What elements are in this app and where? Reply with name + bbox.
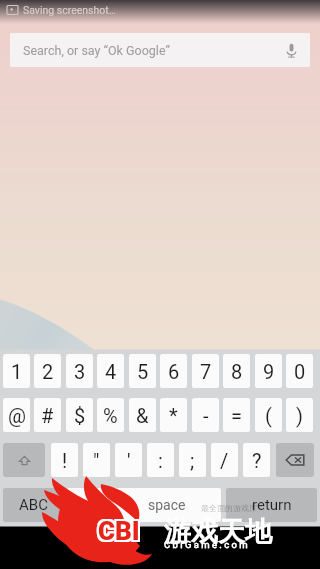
- staticText: @: [8, 404, 26, 427]
- staticText: 9: [263, 360, 275, 383]
- staticText: space: [148, 497, 186, 513]
- staticText: ': [127, 449, 131, 472]
- staticText: 4: [105, 360, 117, 383]
- staticText: *: [169, 404, 178, 427]
- button[interactable]: 0: [286, 354, 313, 388]
- staticText: ": [93, 449, 100, 472]
- button[interactable]: $: [66, 398, 93, 432]
- staticText: ?: [252, 449, 262, 472]
- staticText: 6: [168, 360, 180, 383]
- staticText: CBI: [98, 518, 140, 548]
- staticText: 7: [200, 360, 212, 383]
- staticText: #: [41, 404, 54, 427]
- staticText: $: [74, 404, 86, 427]
- button[interactable]: 8: [223, 354, 250, 388]
- staticText: 8: [231, 360, 243, 383]
- button[interactable]: space: [113, 488, 221, 522]
- staticText: (: [265, 404, 272, 427]
- button[interactable]: 6: [160, 354, 187, 388]
- button[interactable]: 2: [34, 354, 61, 388]
- button[interactable]: ': [115, 443, 142, 477]
- button[interactable]: 4: [97, 354, 124, 388]
- staticText: 1: [11, 360, 23, 383]
- button[interactable]: :: [147, 443, 174, 477]
- staticText: ABC: [19, 496, 48, 514]
- staticText: /: [220, 449, 229, 472]
- button[interactable]: ": [83, 443, 110, 477]
- button[interactable]: /: [211, 443, 238, 477]
- button[interactable]: (: [255, 398, 282, 432]
- button[interactable]: return: [226, 488, 317, 522]
- button[interactable]: Search, or say “Ok Google”: [10, 33, 310, 67]
- button[interactable]: ): [286, 398, 313, 432]
- button[interactable]: Shift: [3, 443, 45, 477]
- button[interactable]: ,: [67, 488, 109, 522]
- button[interactable]: !: [51, 443, 78, 477]
- staticText: 游戏天地: [164, 515, 272, 549]
- staticText: Saving screenshot…: [23, 4, 116, 16]
- staticText: ;: [190, 449, 195, 472]
- staticText: =: [231, 404, 242, 427]
- button[interactable]: =: [223, 398, 250, 432]
- button[interactable]: 1: [3, 354, 30, 388]
- staticText: CBI: [98, 516, 140, 546]
- staticText: CBI: [100, 514, 142, 544]
- staticText: 最全面的游戏库: [201, 503, 257, 513]
- button[interactable]: -: [192, 398, 219, 432]
- button[interactable]: ABC: [3, 488, 63, 522]
- button[interactable]: ;: [179, 443, 206, 477]
- button[interactable]: Voice search: [272, 33, 310, 67]
- staticText: C b i G a m e . c o m: [164, 539, 248, 550]
- staticText: &: [136, 404, 149, 427]
- button[interactable]: ?: [243, 443, 270, 477]
- button[interactable]: @: [3, 398, 30, 432]
- button[interactable]: Backspace: [276, 443, 314, 477]
- staticText: 2: [42, 360, 54, 383]
- staticText: !: [62, 449, 68, 472]
- staticText: CBI: [100, 516, 142, 546]
- staticText: 5: [137, 360, 149, 383]
- staticText: :: [158, 449, 163, 472]
- button[interactable]: 3: [66, 354, 93, 388]
- button[interactable]: &: [129, 398, 156, 432]
- staticText: CBI: [100, 518, 142, 548]
- button[interactable]: 7: [192, 354, 219, 388]
- button[interactable]: 5: [129, 354, 156, 388]
- staticText: ,: [86, 495, 90, 515]
- staticText: ): [296, 404, 303, 427]
- staticText: CBI: [96, 514, 138, 544]
- staticText: 3: [74, 360, 86, 383]
- button[interactable]: %: [97, 398, 124, 432]
- button[interactable]: *: [160, 398, 187, 432]
- staticText: CBI: [96, 516, 138, 546]
- staticText: Search, or say “Ok Google”: [23, 43, 170, 58]
- staticText: -: [203, 404, 209, 427]
- staticText: CBI: [98, 514, 140, 544]
- button[interactable]: 9: [255, 354, 282, 388]
- staticText: %: [103, 404, 118, 427]
- staticText: 0: [294, 360, 306, 383]
- staticText: CBI: [96, 518, 138, 548]
- staticText: return: [252, 496, 292, 514]
- button[interactable]: #: [34, 398, 61, 432]
